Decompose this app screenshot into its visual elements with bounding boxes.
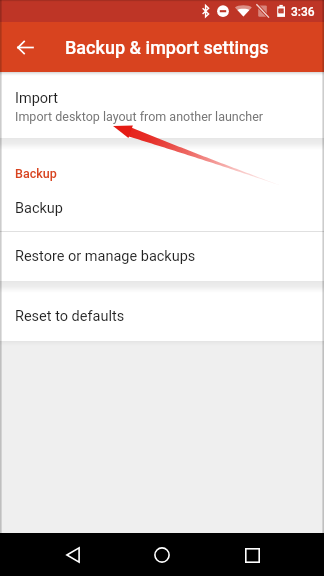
staticText: Import	[15, 90, 59, 107]
staticText: Restore or manage backups	[15, 248, 196, 265]
staticText: 85	[278, 8, 284, 14]
staticText: Reset to defaults	[15, 308, 125, 325]
button[interactable]: Home	[142, 535, 182, 575]
staticText: Import desktop layout from another launc…	[15, 109, 264, 124]
button[interactable]: Reset to defaults	[0, 293, 324, 341]
button[interactable]: Back	[9, 31, 41, 63]
button[interactable]: Import	[0, 72, 324, 138]
button[interactable]: Back	[53, 535, 93, 575]
button[interactable]: Restore or manage backups	[0, 232, 324, 281]
button[interactable]: Backup	[0, 185, 324, 231]
staticText: Backup	[15, 200, 63, 217]
button[interactable]: Recents	[232, 535, 272, 575]
staticText: Backup & import settings	[65, 37, 269, 58]
staticText: 3:36	[291, 5, 315, 19]
staticText: Backup	[15, 166, 57, 181]
